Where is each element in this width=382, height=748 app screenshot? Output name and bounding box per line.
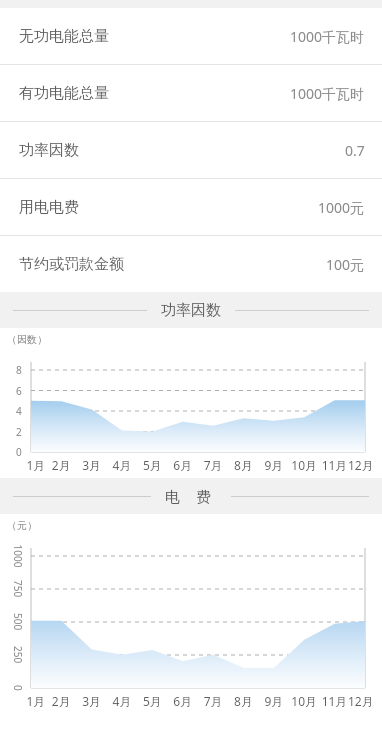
staticText: 有功电能总量 [19, 84, 109, 103]
staticText: 电 费 [165, 486, 217, 506]
staticText: 节约或罚款金额 [19, 255, 124, 274]
staticText: 1000千瓦时 [290, 27, 365, 46]
button[interactable]: 功率因数 [0, 122, 382, 179]
button[interactable]: 有功电能总量 [0, 65, 382, 122]
staticText: 1000千瓦时 [290, 84, 365, 103]
button[interactable]: 无功电能总量 [0, 8, 382, 65]
button[interactable]: 节约或罚款金额 [0, 236, 382, 292]
staticText: 功率因数 [161, 301, 221, 320]
staticText: 1000元 [318, 198, 365, 217]
staticText: 0.7 [345, 141, 365, 160]
staticText: 用电电费 [19, 198, 79, 217]
staticText: 无功电能总量 [19, 27, 109, 46]
button[interactable]: 用电电费 [0, 179, 382, 236]
staticText: 功率因数 [19, 141, 79, 160]
staticText: 100元 [326, 255, 365, 274]
